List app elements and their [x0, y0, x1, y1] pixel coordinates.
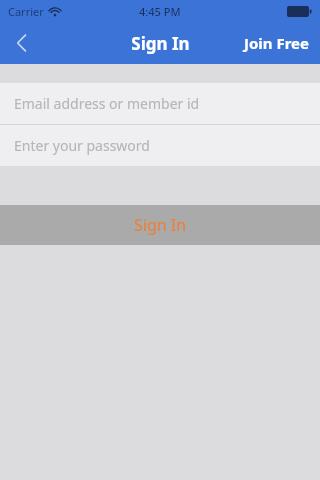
- button[interactable]: Email address or member id: [0, 83, 320, 124]
- button[interactable]: Enter your password: [0, 125, 320, 166]
- staticText: Sign In: [134, 214, 187, 236]
- staticText: Join Free: [244, 33, 310, 53]
- staticText: 4:45 PM: [139, 4, 181, 19]
- staticText: Enter your password: [14, 136, 150, 155]
- button[interactable]: Join Free: [234, 22, 320, 64]
- staticText: Carrier: [8, 4, 44, 19]
- staticText: Sign In: [131, 32, 190, 55]
- button[interactable]: Sign In: [0, 205, 320, 245]
- button[interactable]: Back: [0, 22, 44, 64]
- staticText: Email address or member id: [14, 94, 200, 113]
